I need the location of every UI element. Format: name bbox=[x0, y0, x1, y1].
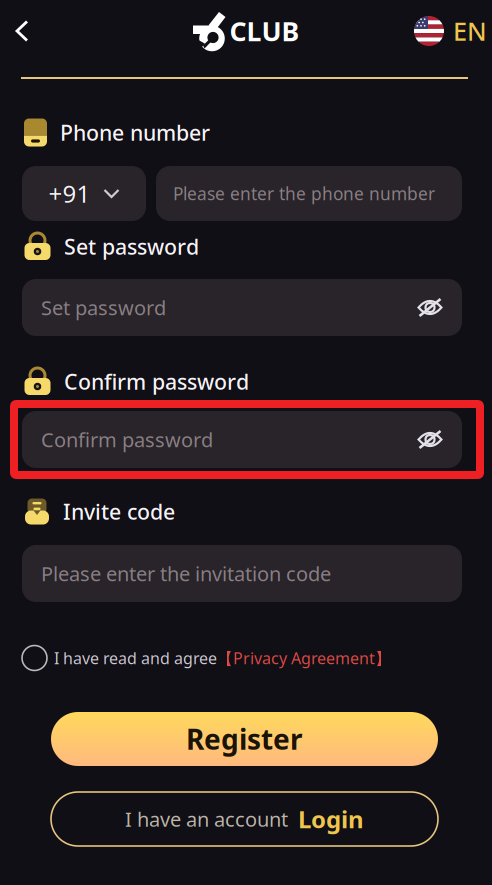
staticText: Confirm password bbox=[64, 367, 249, 396]
button[interactable]: Confirm password bbox=[22, 404, 462, 475]
button[interactable]: Back bbox=[0, 7, 44, 54]
button[interactable]: Please enter the invitation code bbox=[22, 545, 462, 602]
staticText: I have an account bbox=[125, 806, 288, 832]
button[interactable]: Register bbox=[51, 712, 438, 766]
staticText: +91 bbox=[48, 178, 90, 209]
staticText: Invite code bbox=[63, 497, 175, 526]
button[interactable]: I have read and agree bbox=[22, 645, 462, 671]
staticText: 【Privacy Agreement】 bbox=[217, 647, 391, 669]
button[interactable]: I have an account bbox=[51, 792, 438, 846]
staticText: Register bbox=[186, 720, 303, 758]
staticText: I have read and agree bbox=[54, 647, 217, 669]
button[interactable]: Country code +91 bbox=[22, 166, 146, 221]
staticText: Login bbox=[298, 803, 364, 835]
staticText: CLUB bbox=[229, 13, 299, 49]
button[interactable]: Please enter the phone number bbox=[156, 166, 462, 221]
staticText: Please enter the phone number bbox=[173, 182, 435, 205]
staticText: Set password bbox=[64, 232, 199, 261]
staticText: Confirm password bbox=[41, 426, 213, 453]
staticText: EN bbox=[453, 14, 487, 48]
staticText: Please enter the invitation code bbox=[41, 560, 331, 587]
staticText: Set password bbox=[41, 294, 166, 321]
button[interactable]: Language: English bbox=[402, 4, 492, 58]
staticText: Phone number bbox=[60, 118, 210, 147]
button[interactable]: Set password bbox=[22, 279, 462, 336]
